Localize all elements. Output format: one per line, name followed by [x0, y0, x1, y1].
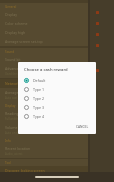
staticText: Info — [5, 139, 11, 143]
button[interactable]: Advanced sound control — [0, 64, 88, 78]
button[interactable]: Reading — [0, 109, 88, 123]
button[interactable]: Sound kit — [0, 55, 88, 64]
button[interactable]: Type 3 — [18, 103, 96, 112]
staticText: General — [5, 5, 17, 9]
staticText: Type 2 — [33, 96, 44, 101]
staticText: Sound — [5, 50, 15, 54]
staticText: Discover, locking screen — [5, 168, 45, 173]
button[interactable]: Type 4 — [18, 112, 96, 121]
button[interactable]: Average — [0, 88, 88, 102]
staticText: Auto cast on — [5, 96, 22, 100]
staticText: Network — [5, 81, 20, 86]
staticText: Average screen set-top — [5, 39, 43, 44]
button[interactable]: Volume — [0, 123, 88, 137]
staticText: Choose a cash reward — [24, 67, 68, 73]
button[interactable]: Dark set — [0, 175, 88, 182]
staticText: Display — [5, 104, 16, 108]
staticText: Sound kit — [5, 57, 21, 62]
staticText: Full width lines — [5, 117, 25, 121]
staticText: Type 4 — [33, 114, 44, 119]
staticText: Reading — [5, 111, 19, 116]
staticText: Average — [5, 90, 19, 95]
button[interactable]: Display high — [0, 28, 88, 37]
staticText: Type 1 — [33, 87, 44, 92]
staticText: Display — [5, 12, 17, 17]
button[interactable]: Default — [18, 76, 96, 85]
staticText: Display high — [5, 30, 26, 35]
staticText: Advanced sound control — [5, 66, 45, 71]
staticText: Recent location — [5, 146, 31, 151]
button[interactable]: CANCEL — [73, 123, 92, 131]
button[interactable]: Type 2 — [18, 94, 96, 103]
button[interactable]: Type 1 — [18, 85, 96, 94]
staticText: Type 3 — [33, 105, 44, 110]
staticText: Audio, at rest — [5, 152, 23, 156]
staticText: Default — [33, 78, 46, 83]
staticText: Auto on show — [5, 131, 23, 135]
staticText: Color scheme — [5, 21, 28, 26]
staticText: Used the entry sounds — [5, 72, 35, 76]
staticText: Volume — [5, 125, 18, 130]
staticText: Tool — [5, 161, 11, 165]
staticText: CANCEL — [76, 125, 89, 129]
button[interactable]: Average screen set-top — [0, 37, 88, 46]
